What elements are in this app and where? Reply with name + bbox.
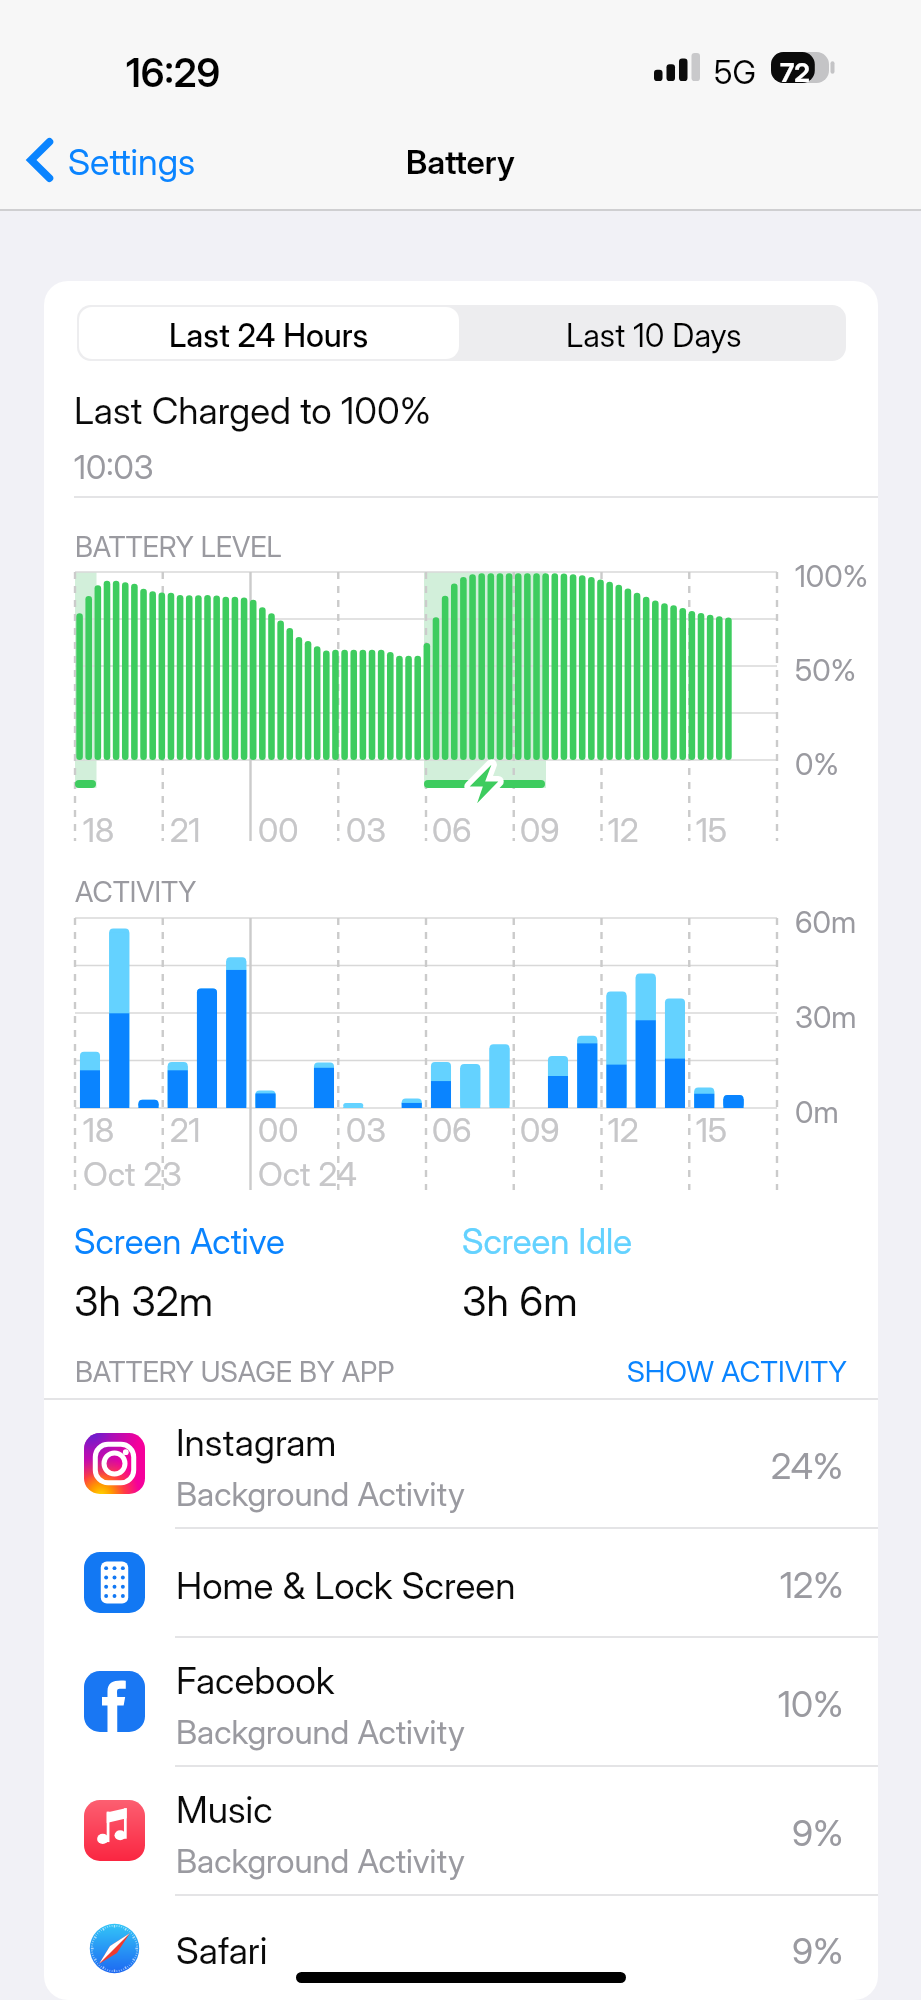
staticText: Background Activity	[176, 1705, 465, 1753]
staticText: 12	[608, 1103, 639, 1151]
staticText: Instagram	[176, 1413, 337, 1467]
staticText: 09	[520, 803, 560, 851]
staticText: 12%	[780, 1556, 844, 1609]
staticText: 30m	[795, 993, 857, 1037]
staticText: 03	[346, 1103, 386, 1151]
staticText: 10:03	[74, 440, 154, 488]
staticText: 0%	[795, 740, 839, 784]
staticText: 9%	[792, 1922, 844, 1975]
staticText: BATTERY USAGE BY APP	[75, 1349, 395, 1390]
staticText: BATTERY LEVEL	[75, 524, 282, 565]
button[interactable]: Settings	[0, 119, 216, 200]
staticText: 18	[83, 803, 115, 851]
staticText: Settings	[68, 133, 196, 186]
button[interactable]: Safari	[44, 1896, 878, 2000]
button[interactable]: Home & Lock Screen	[44, 1529, 878, 1638]
staticText: 72	[780, 52, 810, 83]
staticText: 5G	[714, 47, 756, 94]
button[interactable]: Music	[44, 1767, 878, 1896]
staticText: Battery	[406, 135, 515, 183]
staticText: 21	[170, 803, 201, 851]
staticText: 12	[608, 803, 639, 851]
staticText: Music	[176, 1780, 273, 1834]
staticText: ACTIVITY	[75, 869, 197, 910]
staticText: 3h 32m	[74, 1268, 214, 1328]
staticText: 24%	[771, 1437, 844, 1490]
staticText: Background Activity	[176, 1467, 465, 1515]
button[interactable]: SHOW ACTIVITY	[627, 1348, 847, 1390]
staticText: 60m	[795, 898, 857, 942]
staticText: Last Charged to 100%	[74, 381, 431, 435]
staticText: 18	[83, 1103, 115, 1151]
staticText: 09	[520, 1103, 560, 1151]
staticText: Home & Lock Screen	[176, 1556, 516, 1610]
staticText: Facebook	[176, 1651, 335, 1705]
staticText: 16:29	[126, 41, 221, 98]
button[interactable]: Facebook	[44, 1638, 878, 1767]
staticText: 21	[170, 1103, 201, 1151]
staticText: Last 10 Days	[566, 310, 742, 357]
staticText: 00	[258, 803, 299, 851]
button[interactable]: Last 10 Days	[461, 305, 846, 361]
staticText: 50%	[795, 646, 857, 690]
staticText: Oct 23	[83, 1147, 182, 1195]
staticText: 15	[696, 1103, 727, 1151]
staticText: 06	[432, 803, 472, 851]
staticText: Background Activity	[176, 1834, 465, 1882]
staticText: 100%	[795, 552, 868, 596]
staticText: Screen Idle	[462, 1213, 633, 1264]
staticText: 10%	[778, 1675, 844, 1728]
staticText: Safari	[176, 1921, 268, 1975]
staticText: Screen Active	[74, 1213, 285, 1264]
staticText: 03	[346, 803, 386, 851]
staticText: 06	[432, 1103, 472, 1151]
button[interactable]: Instagram	[44, 1400, 878, 1529]
staticText: 3h 6m	[462, 1268, 578, 1328]
staticText: 15	[696, 803, 727, 851]
staticText: Last 24 Hours	[169, 310, 369, 357]
staticText: Oct 24	[258, 1147, 357, 1195]
staticText: 0m	[795, 1088, 839, 1132]
button[interactable]: Last 24 Hours	[79, 307, 459, 359]
staticText: 9%	[792, 1804, 844, 1857]
staticText: 00	[258, 1103, 299, 1151]
